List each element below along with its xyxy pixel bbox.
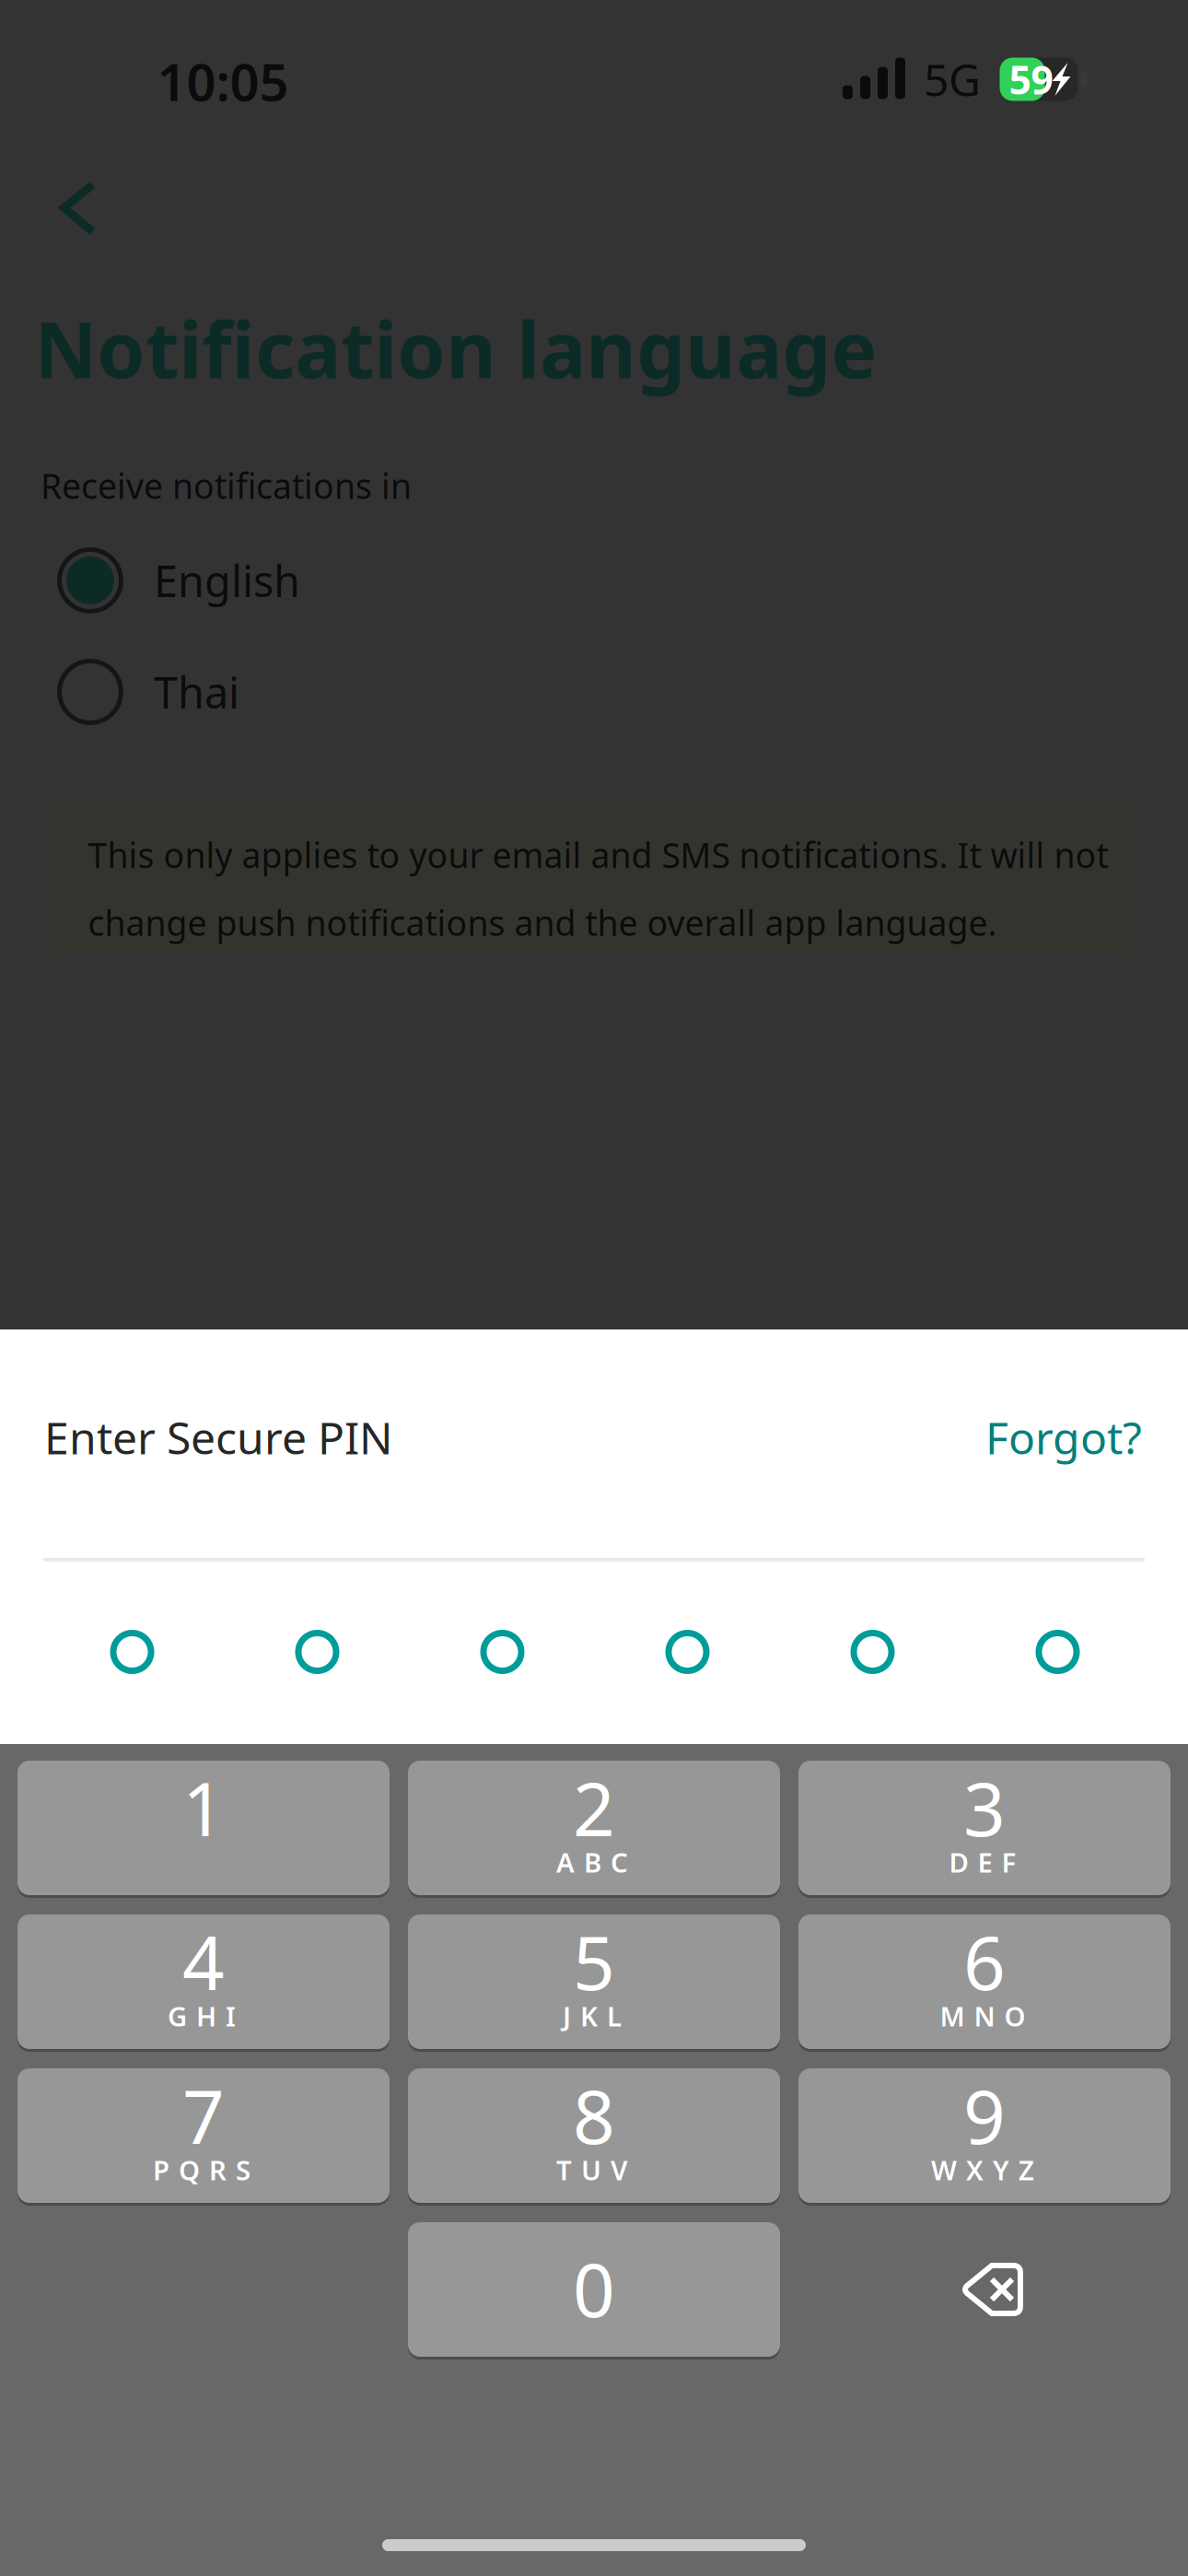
button[interactable]: 8 xyxy=(408,2068,780,2203)
button[interactable]: 6 xyxy=(798,1914,1171,2049)
staticText: 6 xyxy=(963,1913,1006,2010)
button[interactable]: 0 xyxy=(408,2222,780,2357)
staticText: Enter Secure PIN xyxy=(44,1408,392,1467)
staticText: JKL xyxy=(563,1998,622,2034)
staticText: 7 xyxy=(182,2066,225,2164)
staticText: 0 xyxy=(573,2240,615,2337)
button[interactable]: Thai xyxy=(53,644,1186,740)
staticText: PQRS xyxy=(153,2152,250,2188)
staticText: English xyxy=(154,552,300,609)
staticText: Receive notifications in xyxy=(41,463,412,508)
staticText: 5 xyxy=(573,1913,615,2010)
staticText: TUV xyxy=(556,2152,628,2188)
staticText: 3 xyxy=(963,1759,1006,1857)
staticText: This only applies to your email and SMS … xyxy=(88,832,1108,945)
button[interactable]: 1 xyxy=(17,1761,390,1895)
staticText: 1 xyxy=(182,1759,225,1857)
staticText: DEF xyxy=(949,1844,1016,1880)
staticText: Notification language xyxy=(34,297,877,400)
staticText: 4 xyxy=(182,1913,225,2010)
staticText: Thai xyxy=(154,663,239,720)
button[interactable]: 7 xyxy=(17,2068,390,2203)
staticText: 10:05 xyxy=(157,47,289,115)
staticText: 59 xyxy=(1009,53,1053,105)
staticText: ABC xyxy=(556,1844,628,1880)
button[interactable]: 2 xyxy=(408,1761,780,1895)
button[interactable]: Delete xyxy=(798,2222,1171,2357)
staticText: 9 xyxy=(963,2066,1006,2164)
button[interactable]: Back xyxy=(21,151,135,265)
button[interactable]: 4 xyxy=(17,1914,390,2049)
button[interactable]: 3 xyxy=(798,1761,1171,1895)
staticText: Forgot? xyxy=(985,1408,1142,1467)
staticText: GHI xyxy=(168,1998,236,2034)
staticText: WXYZ xyxy=(931,2152,1034,2188)
button[interactable]: 9 xyxy=(798,2068,1171,2203)
staticText: MNO xyxy=(940,1998,1025,2034)
button[interactable]: Forgot? xyxy=(958,1411,1142,1463)
button[interactable]: English xyxy=(53,533,1186,628)
button[interactable]: 5 xyxy=(408,1914,780,2049)
staticText: 2 xyxy=(573,1759,615,1857)
staticText: 5G xyxy=(924,50,981,109)
staticText: 8 xyxy=(573,2066,615,2164)
